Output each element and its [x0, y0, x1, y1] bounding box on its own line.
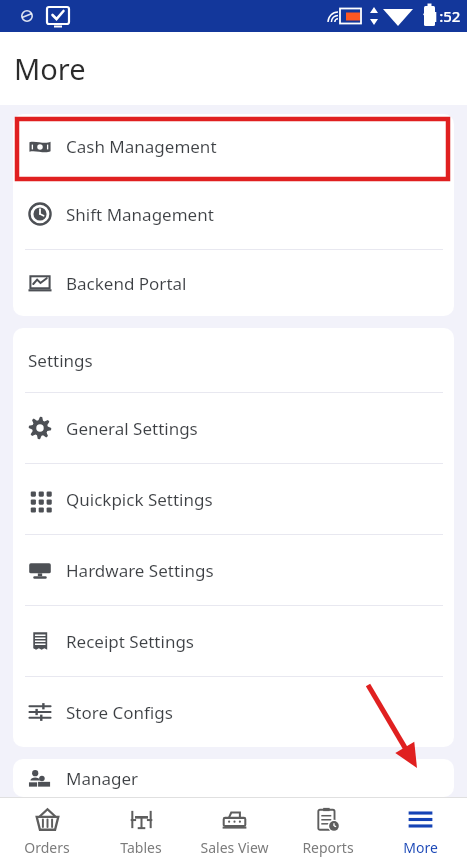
- button[interactable]: More: [374, 798, 467, 865]
- staticText: Sales View: [200, 838, 269, 857]
- button[interactable]: Tables: [94, 798, 188, 865]
- staticText: Orders: [24, 838, 70, 857]
- staticText: More: [403, 838, 438, 857]
- staticText: Hardware Settings: [66, 559, 214, 582]
- button[interactable]: Manager: [13, 759, 454, 797]
- staticText: Cash Management: [66, 135, 217, 158]
- staticText: Quickpick Settings: [66, 488, 213, 511]
- button[interactable]: Hardware Settings: [13, 535, 454, 605]
- staticText: General Settings: [66, 417, 198, 440]
- staticText: Manager: [66, 767, 139, 790]
- staticText: Shift Management: [66, 203, 214, 226]
- button[interactable]: Reports: [281, 798, 374, 865]
- staticText: Receipt Settings: [66, 630, 194, 653]
- button[interactable]: Shift Management: [13, 179, 454, 249]
- button[interactable]: Sales View: [188, 798, 281, 865]
- staticText: Settings: [28, 349, 93, 372]
- button[interactable]: Receipt Settings: [13, 606, 454, 676]
- staticText: Reports: [302, 838, 354, 857]
- button[interactable]: Orders: [0, 798, 94, 865]
- staticText: Tables: [120, 838, 162, 857]
- button[interactable]: Quickpick Settings: [13, 464, 454, 534]
- button[interactable]: Store Configs: [13, 677, 454, 747]
- button[interactable]: Cash Management: [13, 114, 454, 179]
- staticText: Backend Portal: [66, 272, 187, 295]
- staticText: More: [14, 49, 86, 88]
- staticText: Store Configs: [66, 701, 173, 724]
- staticText: 11:52: [422, 6, 461, 26]
- button[interactable]: General Settings: [13, 393, 454, 463]
- button[interactable]: Backend Portal: [13, 250, 454, 316]
